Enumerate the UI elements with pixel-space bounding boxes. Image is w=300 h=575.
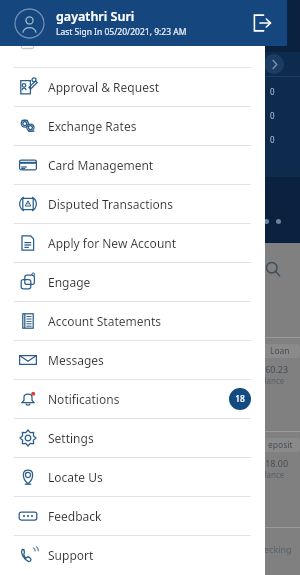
staticText: 760.23 — [260, 363, 289, 375]
staticText: Disputed Transactions — [48, 196, 174, 212]
button[interactable]: Support — [0, 536, 265, 574]
button[interactable]: Profile — [14, 8, 45, 39]
staticText: 018.00 — [260, 457, 289, 469]
staticText: Account Statements — [48, 313, 161, 329]
staticText: Settings — [48, 430, 94, 446]
button[interactable]: Sign out — [241, 3, 281, 43]
button[interactable]: Approval & Request — [0, 68, 265, 106]
staticText: Locate Us — [48, 469, 103, 485]
staticText: Last Sign In 05/20/2021, 9:23 AM — [56, 26, 187, 38]
staticText: Feedback — [48, 508, 102, 524]
staticText: Notifications — [48, 391, 120, 407]
staticText: Engage — [48, 274, 91, 290]
staticText: Messages — [48, 352, 104, 368]
staticText: 0 — [270, 86, 275, 97]
staticText: 18 — [235, 393, 245, 405]
staticText: Support — [48, 547, 94, 563]
button[interactable]: Messages — [0, 341, 265, 379]
staticText: alance — [260, 469, 285, 480]
button[interactable]: Exchange Rates — [0, 107, 265, 145]
staticText: Exchange Rates — [48, 118, 137, 134]
button[interactable]: Card Management — [0, 146, 265, 184]
staticText: alance — [260, 375, 285, 386]
button[interactable]: Disputed Transactions — [0, 185, 265, 223]
staticText: eposit — [268, 439, 293, 451]
staticText: 0 — [270, 110, 275, 121]
staticText: gayathri Suri — [56, 8, 135, 25]
button[interactable]: Feedback — [0, 497, 265, 535]
staticText: Card Management — [48, 157, 154, 173]
staticText: Apply for New Account — [48, 235, 177, 251]
button[interactable]: Locate Us — [0, 458, 265, 496]
staticText: Cardless Cash — [48, 32, 127, 48]
staticText: Loan — [270, 345, 290, 357]
button[interactable]: Notifications — [0, 380, 265, 418]
staticText: 0 — [270, 134, 275, 145]
button[interactable]: Settings — [0, 419, 265, 457]
button[interactable]: Account Statements — [0, 302, 265, 340]
staticText: Approval & Request — [48, 79, 159, 95]
button[interactable]: Apply for New Account — [0, 224, 265, 262]
button[interactable]: Engage — [0, 263, 265, 301]
staticText: ecking — [264, 543, 292, 555]
